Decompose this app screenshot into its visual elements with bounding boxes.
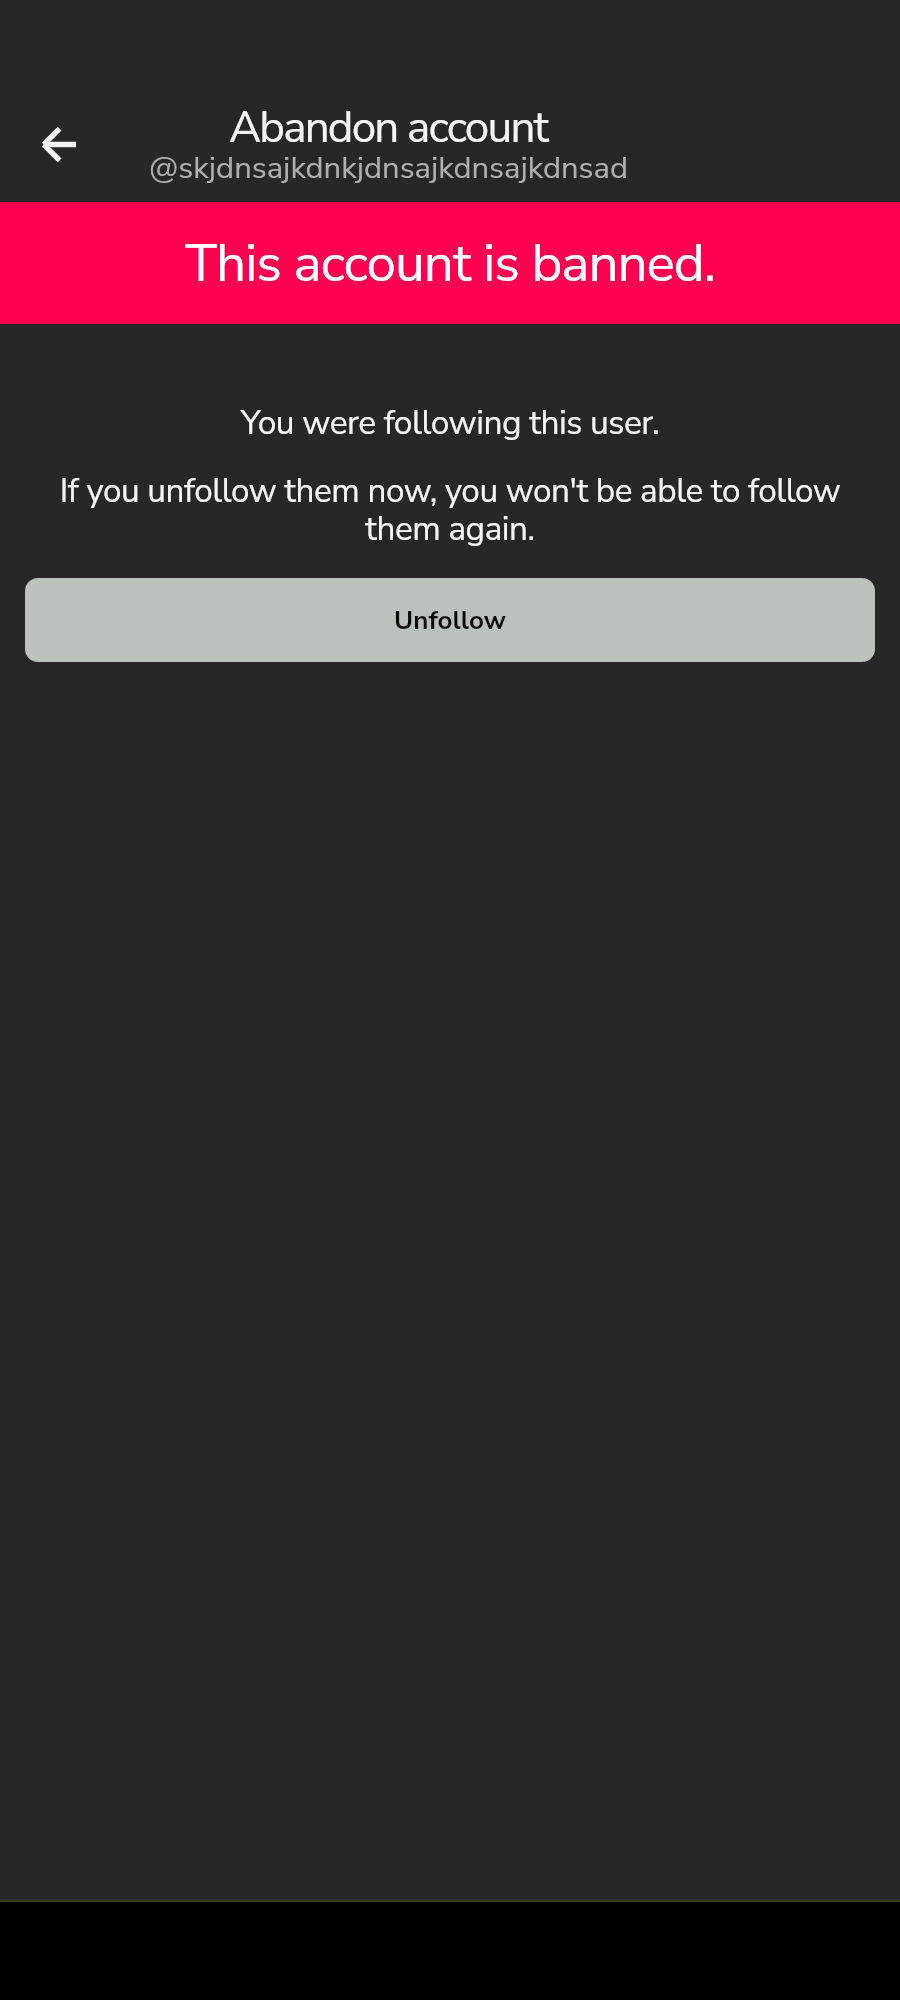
staticText: Unfollow	[394, 603, 506, 638]
staticText: This account is banned.	[185, 227, 715, 299]
staticText: @skjdnsajkdnkjdnsajkdnsajkdnsad	[149, 147, 628, 189]
staticText: If you unfollow them now, you won't be a…	[28, 468, 872, 552]
staticText: You were following this user.	[0, 400, 900, 446]
button[interactable]: Unfollow	[25, 578, 875, 662]
staticText: Abandon account	[229, 98, 548, 158]
button[interactable]: Back	[20, 106, 96, 182]
